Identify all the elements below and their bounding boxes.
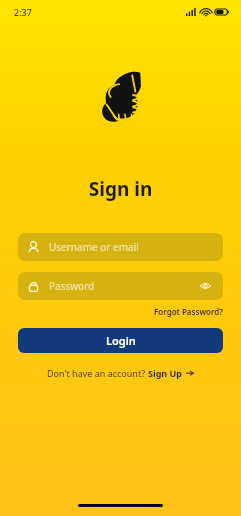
- button[interactable]: Username or email: [18, 233, 223, 261]
- button[interactable]: Login: [18, 328, 223, 353]
- button[interactable]: Show password: [197, 278, 213, 294]
- staticText: Sign in: [0, 176, 241, 202]
- button[interactable]: Forgot Password?: [154, 306, 223, 317]
- button[interactable]: Sign Up: [148, 367, 194, 379]
- staticText: Forgot Password?: [154, 306, 223, 317]
- staticText: Username or email: [49, 240, 139, 254]
- staticText: Login: [106, 333, 136, 348]
- staticText: Password: [49, 279, 197, 293]
- staticText: 2:37: [14, 6, 32, 18]
- staticText: Don't have an account?: [47, 367, 148, 379]
- button[interactable]: Password: [18, 272, 223, 300]
- staticText: Sign Up: [148, 367, 183, 379]
